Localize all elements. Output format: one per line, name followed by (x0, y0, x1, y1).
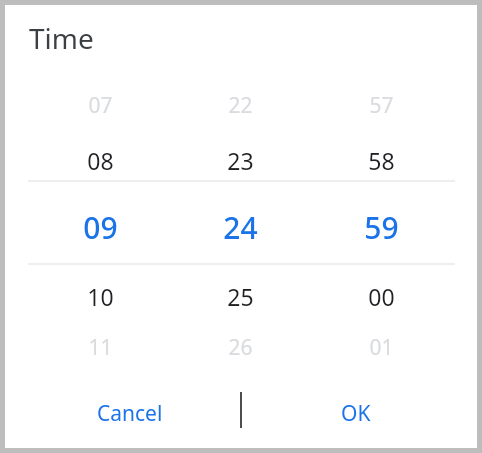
button[interactable]: 09 (55, 201, 145, 253)
button[interactable]: 57 (336, 86, 426, 124)
staticText: 58 (368, 145, 395, 176)
staticText: 59 (364, 207, 399, 248)
staticText: 08 (87, 145, 114, 176)
staticText: 23 (227, 145, 254, 176)
button[interactable]: 00 (336, 275, 426, 317)
button[interactable]: 25 (195, 275, 285, 317)
staticText: 07 (88, 91, 113, 120)
staticText: 10 (87, 281, 114, 312)
button[interactable]: 22 (195, 86, 285, 124)
staticText: 25 (227, 281, 254, 312)
staticText: 22 (228, 91, 253, 120)
button[interactable]: OK (308, 391, 404, 435)
staticText: 24 (223, 207, 258, 248)
button[interactable]: 11 (55, 328, 145, 366)
staticText: 11 (88, 333, 113, 362)
button[interactable]: 23 (195, 139, 285, 181)
staticText: 00 (368, 281, 395, 312)
staticText: Cancel (97, 399, 163, 428)
button[interactable]: 08 (55, 139, 145, 181)
button[interactable]: Cancel (67, 391, 193, 435)
button[interactable]: 10 (55, 275, 145, 317)
button[interactable]: 24 (195, 201, 285, 253)
staticText: 09 (83, 207, 118, 248)
staticText: 57 (369, 91, 394, 120)
button[interactable]: 58 (336, 139, 426, 181)
staticText: OK (341, 399, 371, 428)
staticText: Time (29, 19, 94, 57)
staticText: 01 (369, 333, 394, 362)
staticText: 26 (228, 333, 253, 362)
button[interactable]: 26 (195, 328, 285, 366)
button[interactable]: 07 (55, 86, 145, 124)
button[interactable]: 59 (336, 201, 426, 253)
button[interactable]: 01 (336, 328, 426, 366)
